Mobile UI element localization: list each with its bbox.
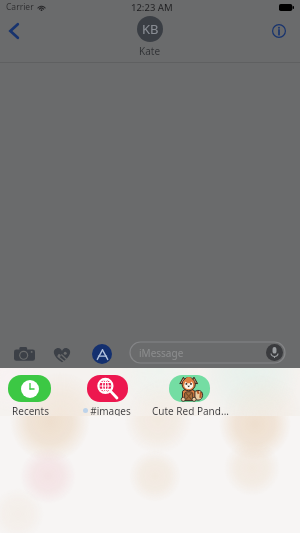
staticText: 12:23 AM (131, 1, 173, 14)
button[interactable]: Recents (8, 375, 51, 402)
button[interactable]: iMessage (130, 342, 285, 363)
button[interactable]: Digital Touch (49, 341, 75, 367)
button[interactable]: App Store (89, 341, 115, 367)
button[interactable]: KB (137, 16, 163, 58)
button[interactable]: #images (87, 375, 128, 402)
button[interactable]: Details (266, 18, 292, 44)
staticText: Recents (12, 404, 49, 416)
button[interactable]: Camera (11, 341, 37, 367)
button[interactable]: Back (1, 18, 27, 44)
staticText: Cute Red Pand... (152, 404, 229, 416)
staticText: #images (90, 404, 131, 416)
staticText: Kate (139, 44, 161, 58)
staticText: KB (142, 20, 159, 38)
button[interactable]: Dictate (266, 344, 283, 361)
staticText: Carrier (6, 1, 34, 13)
button[interactable]: Cute Red Pand... (169, 375, 210, 402)
staticText: iMessage (139, 346, 184, 360)
